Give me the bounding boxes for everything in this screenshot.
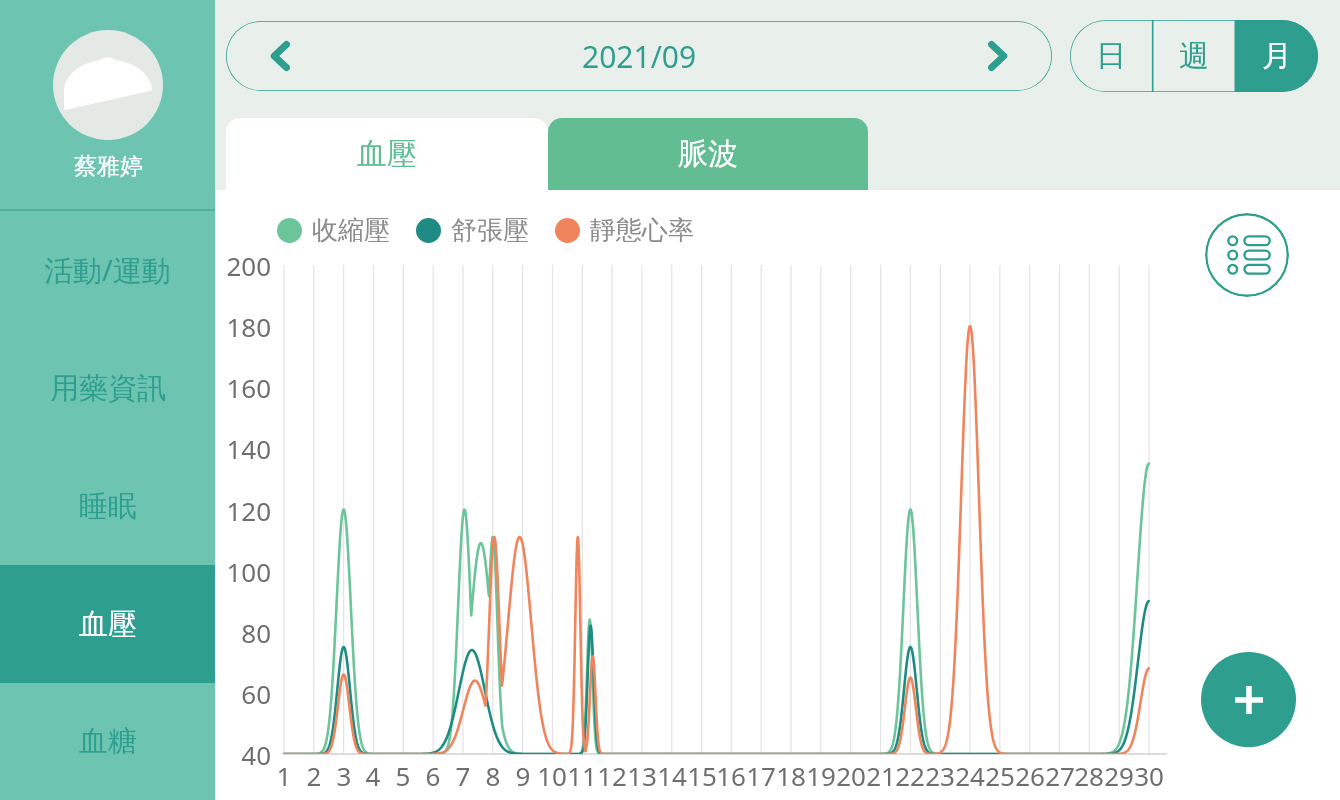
button[interactable]: Previous month <box>226 21 336 91</box>
staticText: 23 <box>922 758 958 793</box>
button[interactable]: Add record <box>1201 652 1296 747</box>
staticText: 9 <box>505 758 541 793</box>
button[interactable]: 月 <box>1235 20 1318 92</box>
staticText: 7 <box>445 758 481 793</box>
button[interactable]: 蔡雅婷 <box>0 0 215 211</box>
staticText: 30 <box>1131 758 1167 793</box>
staticText: 5 <box>385 758 421 793</box>
staticText: 140 <box>221 431 271 466</box>
staticText: 17 <box>743 758 779 793</box>
staticText: 60 <box>221 676 271 711</box>
button[interactable]: 血壓 <box>0 565 215 683</box>
staticText: 4 <box>355 758 391 793</box>
staticText: 6 <box>415 758 451 793</box>
button[interactable]: 血糖 <box>0 683 215 800</box>
staticText: 26 <box>1012 758 1048 793</box>
staticText: 100 <box>221 554 271 589</box>
staticText: 16 <box>713 758 749 793</box>
staticText: 月 <box>1262 37 1292 75</box>
staticText: 180 <box>221 309 271 344</box>
button[interactable]: 活動/運動 <box>0 211 215 329</box>
staticText: 29 <box>1101 758 1137 793</box>
staticText: 18 <box>773 758 809 793</box>
staticText: 15 <box>684 758 720 793</box>
staticText: 200 <box>221 248 271 283</box>
staticText: 21 <box>863 758 899 793</box>
staticText: 22 <box>892 758 928 793</box>
staticText: 血糖 <box>79 723 137 760</box>
staticText: 8 <box>475 758 511 793</box>
staticText: 日 <box>1096 37 1126 75</box>
staticText: 2021/09 <box>582 36 697 77</box>
staticText: 25 <box>982 758 1018 793</box>
staticText: 舒張壓 <box>451 214 529 247</box>
staticText: 血壓 <box>79 606 137 643</box>
staticText: 蔡雅婷 <box>74 152 143 181</box>
staticText: 13 <box>624 758 660 793</box>
staticText: 週 <box>1179 37 1209 75</box>
staticText: 160 <box>221 370 271 405</box>
button[interactable]: List view <box>1205 213 1289 297</box>
button[interactable]: 用藥資訊 <box>0 329 215 447</box>
button[interactable]: 日 <box>1070 20 1152 92</box>
staticText: 27 <box>1042 758 1078 793</box>
staticText: 睡眠 <box>79 488 137 525</box>
staticText: 脈波 <box>678 135 738 173</box>
staticText: 1 <box>266 758 302 793</box>
staticText: 40 <box>221 737 271 772</box>
staticText: 12 <box>594 758 630 793</box>
button[interactable]: Next month <box>942 21 1052 91</box>
staticText: 14 <box>654 758 690 793</box>
staticText: 2 <box>296 758 332 793</box>
staticText: 靜態心率 <box>590 214 694 247</box>
staticText: 120 <box>221 493 271 528</box>
staticText: 收縮壓 <box>312 214 390 247</box>
staticText: 28 <box>1071 758 1107 793</box>
button[interactable]: 睡眠 <box>0 447 215 565</box>
button[interactable]: 週 <box>1152 20 1235 92</box>
button[interactable]: 血壓 <box>226 118 548 190</box>
staticText: 11 <box>564 758 600 793</box>
staticText: 10 <box>534 758 570 793</box>
staticText: 80 <box>221 615 271 650</box>
staticText: 3 <box>326 758 362 793</box>
staticText: 24 <box>952 758 988 793</box>
staticText: 活動/運動 <box>44 250 171 290</box>
staticText: 用藥資訊 <box>50 370 166 407</box>
staticText: 20 <box>833 758 869 793</box>
button[interactable]: 脈波 <box>548 118 868 190</box>
staticText: 19 <box>803 758 839 793</box>
staticText: 血壓 <box>357 135 417 173</box>
